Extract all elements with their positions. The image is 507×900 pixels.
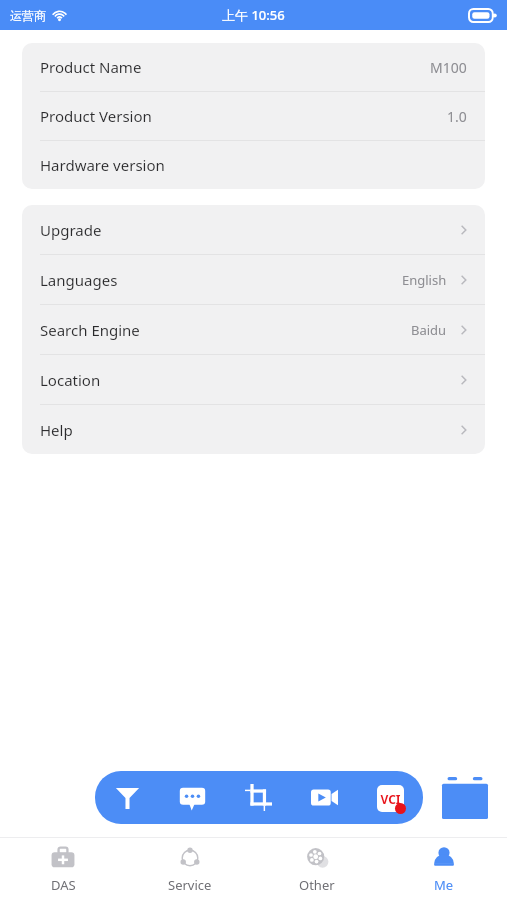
staticText: Languages — [40, 270, 118, 290]
button[interactable]: Hardware version — [22, 141, 485, 189]
staticText: 上午 10:56 — [222, 6, 285, 24]
staticText: Search Engine — [40, 320, 140, 340]
staticText: Upgrade — [40, 220, 102, 240]
button[interactable]: Filter — [95, 771, 160, 824]
button[interactable]: Messages — [160, 771, 225, 824]
button[interactable]: VCI — [357, 771, 423, 824]
button[interactable]: Search Engine — [22, 305, 485, 354]
button[interactable]: Languages — [22, 255, 485, 304]
staticText: Product Name — [40, 57, 142, 77]
staticText: Hardware version — [40, 155, 165, 175]
staticText: M100 — [430, 58, 467, 77]
button[interactable]: Service — [126, 838, 253, 900]
staticText: Me — [434, 876, 454, 894]
button[interactable]: Other — [253, 838, 380, 900]
staticText: 1.0 — [447, 107, 467, 126]
staticText: Help — [40, 420, 73, 440]
button[interactable]: Help — [22, 405, 485, 454]
button[interactable]: Upgrade — [22, 205, 485, 254]
staticText: DAS — [51, 876, 76, 894]
button[interactable]: Me — [380, 838, 507, 900]
staticText: Baidu — [411, 321, 447, 339]
button[interactable]: Record video — [291, 771, 357, 824]
staticText: VCI — [380, 791, 401, 807]
staticText: Product Version — [40, 106, 152, 126]
staticText: Service — [168, 876, 212, 894]
staticText: Other — [299, 876, 335, 894]
staticText: Location — [40, 370, 101, 390]
button[interactable]: Crop — [225, 771, 291, 824]
button[interactable]: Product Name — [22, 43, 485, 91]
button[interactable]: VCI battery — [438, 771, 491, 824]
button[interactable]: Location — [22, 355, 485, 404]
staticText: 运营商 — [10, 8, 46, 23]
staticText: English — [402, 271, 447, 289]
button[interactable]: DAS — [0, 838, 126, 900]
button[interactable]: Product Version — [22, 92, 485, 140]
